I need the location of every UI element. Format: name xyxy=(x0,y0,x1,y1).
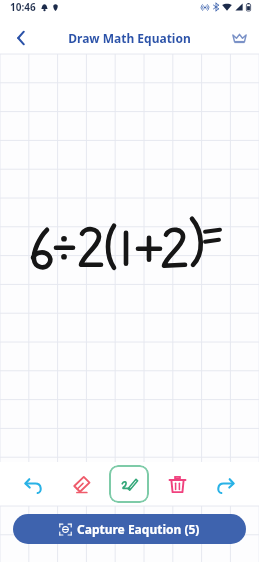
button[interactable]: Redo xyxy=(205,465,245,503)
staticText: Draw Math Equation xyxy=(68,30,191,46)
button[interactable]: Back xyxy=(6,23,36,53)
button[interactable]: Undo xyxy=(14,465,53,503)
button[interactable]: Pen xyxy=(109,465,149,503)
button[interactable]: Premium xyxy=(225,24,253,52)
button[interactable]: Capture Eaqution (5) xyxy=(13,514,246,544)
button[interactable]: Eraser xyxy=(61,465,101,503)
staticText: Capture Eaqution (5) xyxy=(77,521,200,537)
button[interactable]: Delete xyxy=(157,465,197,503)
staticText: 10:46 xyxy=(10,0,36,14)
